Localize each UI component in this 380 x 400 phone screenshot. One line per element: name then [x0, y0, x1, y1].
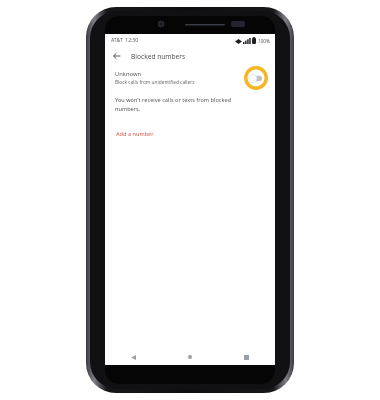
button[interactable]: Recent apps	[218, 349, 275, 365]
button[interactable]: Add a number	[115, 128, 155, 140]
button[interactable]: Home	[161, 349, 218, 365]
button[interactable]: Back	[105, 349, 161, 365]
button[interactable]: Back	[109, 48, 125, 64]
staticText: You won't receive calls or texts from bl…	[115, 96, 232, 112]
button[interactable]: Block calls from unidentified callers to…	[249, 74, 263, 83]
button[interactable]: Unknown	[105, 66, 275, 90]
staticText: Block calls from unidentified callers	[115, 79, 195, 86]
staticText: Add a number	[116, 130, 154, 138]
staticText: Blocked numbers	[131, 52, 186, 61]
staticText: Unknown	[115, 70, 142, 78]
staticText: 100%	[258, 38, 270, 44]
staticText: AT&T 12:30	[111, 37, 139, 44]
